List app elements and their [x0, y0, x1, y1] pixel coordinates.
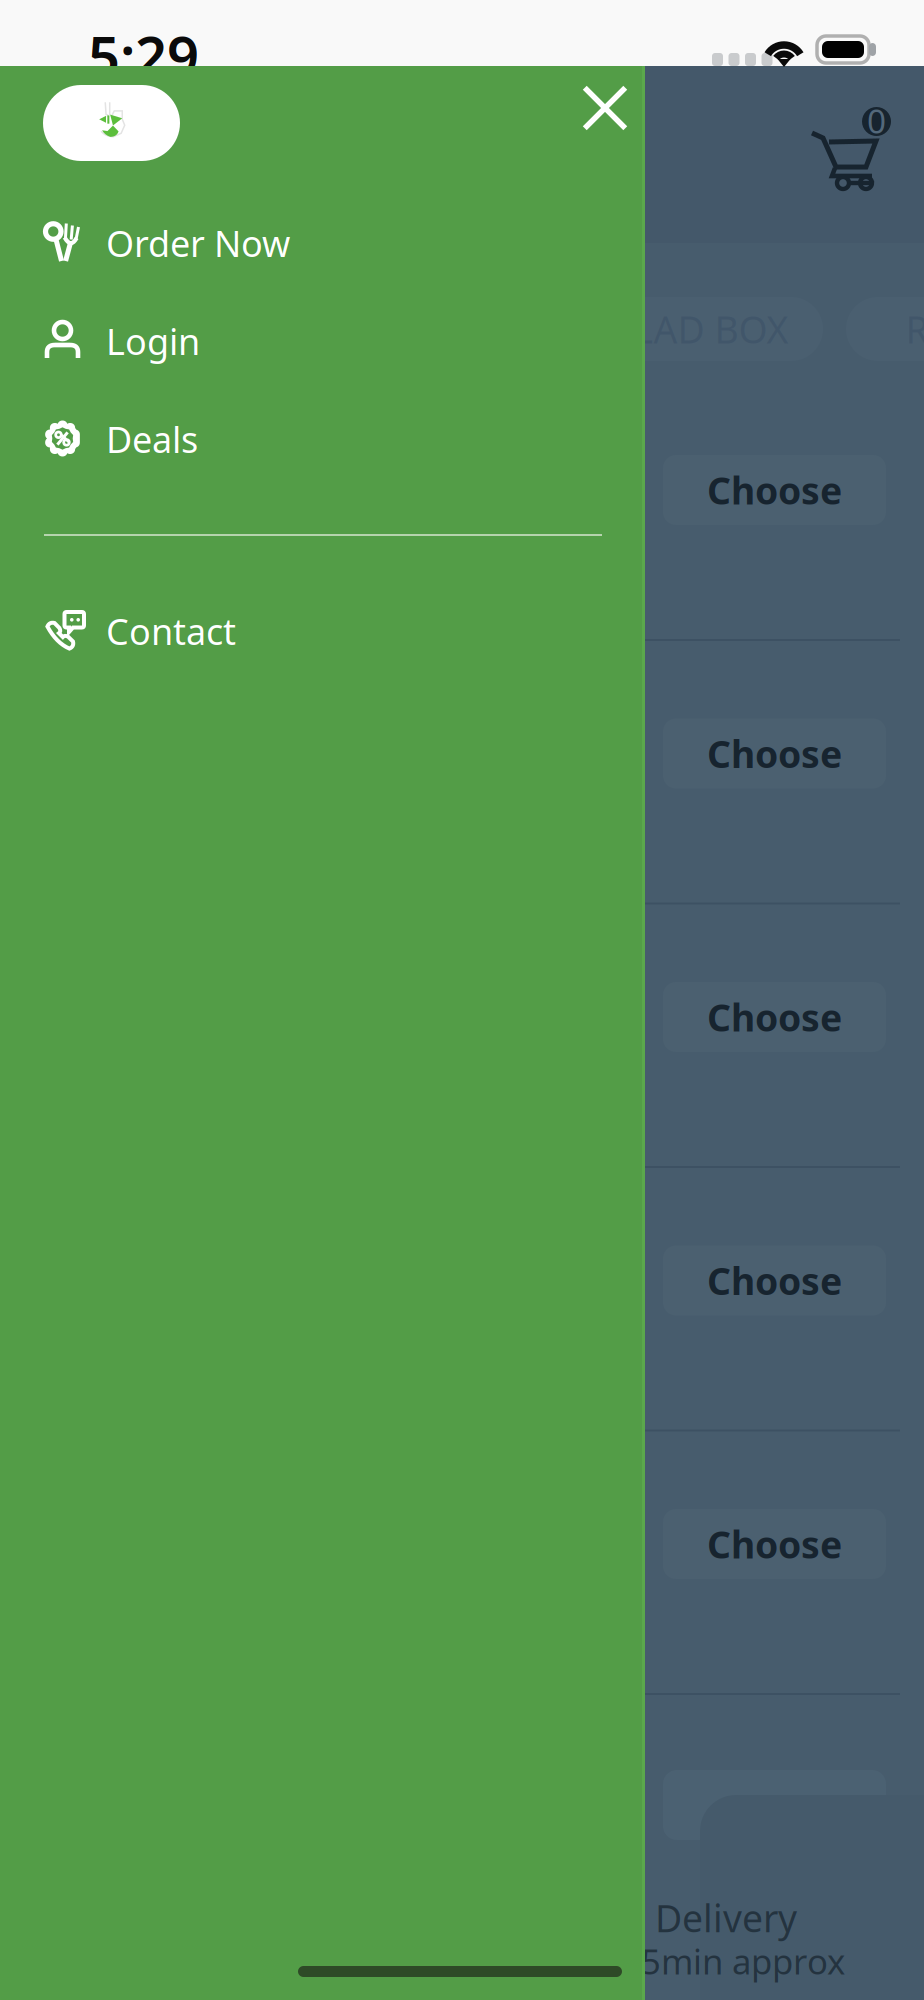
button[interactable]: Contact	[0, 582, 645, 680]
button[interactable]	[43, 85, 180, 161]
staticText: RICE	[905, 304, 924, 354]
button[interactable]: Close menu	[563, 66, 647, 150]
button[interactable]: Deals	[0, 390, 645, 488]
staticText: Login	[106, 317, 200, 365]
staticText: SALAD BOX	[589, 304, 788, 354]
staticText: Choose	[707, 729, 842, 778]
button[interactable]: Login	[0, 292, 645, 390]
staticText: 5:29	[88, 18, 199, 92]
staticText: 5min approx	[641, 1938, 845, 1984]
staticText: Choose	[707, 1256, 842, 1305]
staticText: 0	[867, 98, 886, 143]
staticText: Choose	[707, 1519, 842, 1569]
staticText: Contact	[106, 607, 236, 655]
staticText: Choose	[707, 465, 842, 515]
staticText: Delivery	[655, 1893, 797, 1943]
button[interactable]: Order Now	[0, 194, 645, 292]
button[interactable]: Cart	[790, 77, 910, 202]
staticText: Deals	[106, 415, 198, 463]
staticText: Choose	[707, 992, 842, 1042]
staticText: Order Now	[106, 219, 290, 267]
